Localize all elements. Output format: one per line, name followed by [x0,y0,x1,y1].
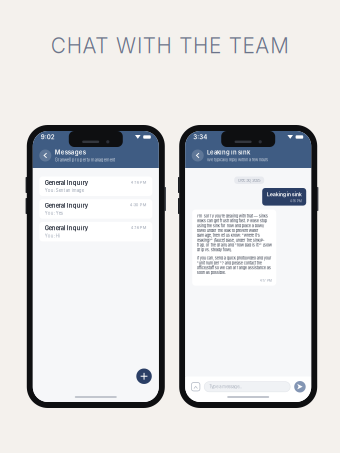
button[interactable]: Attach photo [191,382,200,391]
button[interactable]: Back [39,149,51,161]
staticText: 4:30 PM [130,202,147,207]
staticText: Dec 30, 2025 [238,178,260,183]
staticText: 4:16 PM [131,225,147,230]
staticText: We typically reply within a few hours [207,157,268,162]
staticText: 4:17 PM [260,278,272,283]
staticText: You: Sent an image [45,188,84,193]
staticText: 3:34 [193,133,207,141]
staticText: Type a message... [209,384,242,389]
button[interactable]: Send [294,381,306,392]
staticText: If you can, send a quick photo/video and… [197,256,272,275]
staticText: You: Yes [45,211,63,216]
button[interactable]: General Inquiry [39,176,152,196]
staticText: Leaking in sink [267,191,302,198]
staticText: CHAT WITH THE TEAM [51,33,289,58]
staticText: General Inquiry [45,225,88,232]
staticText: General Inquiry [45,202,88,209]
staticText: 9:02 [41,133,55,141]
staticText: I'm sorry you're dealing with that — sin… [197,214,272,252]
button[interactable]: General Inquiry [39,222,152,241]
button[interactable]: New conversation [136,368,152,384]
staticText: 4:16 PM [290,199,302,203]
button[interactable]: General Inquiry [39,199,152,219]
button[interactable]: Back [192,149,204,161]
staticText: General Inquiry [45,179,88,186]
staticText: Leaking in sink [207,149,250,156]
staticText: Messages [55,148,86,156]
staticText: You: Hi [45,233,60,238]
staticText: Granwell property management [55,157,115,162]
staticText: 4:16 PM [131,180,147,185]
